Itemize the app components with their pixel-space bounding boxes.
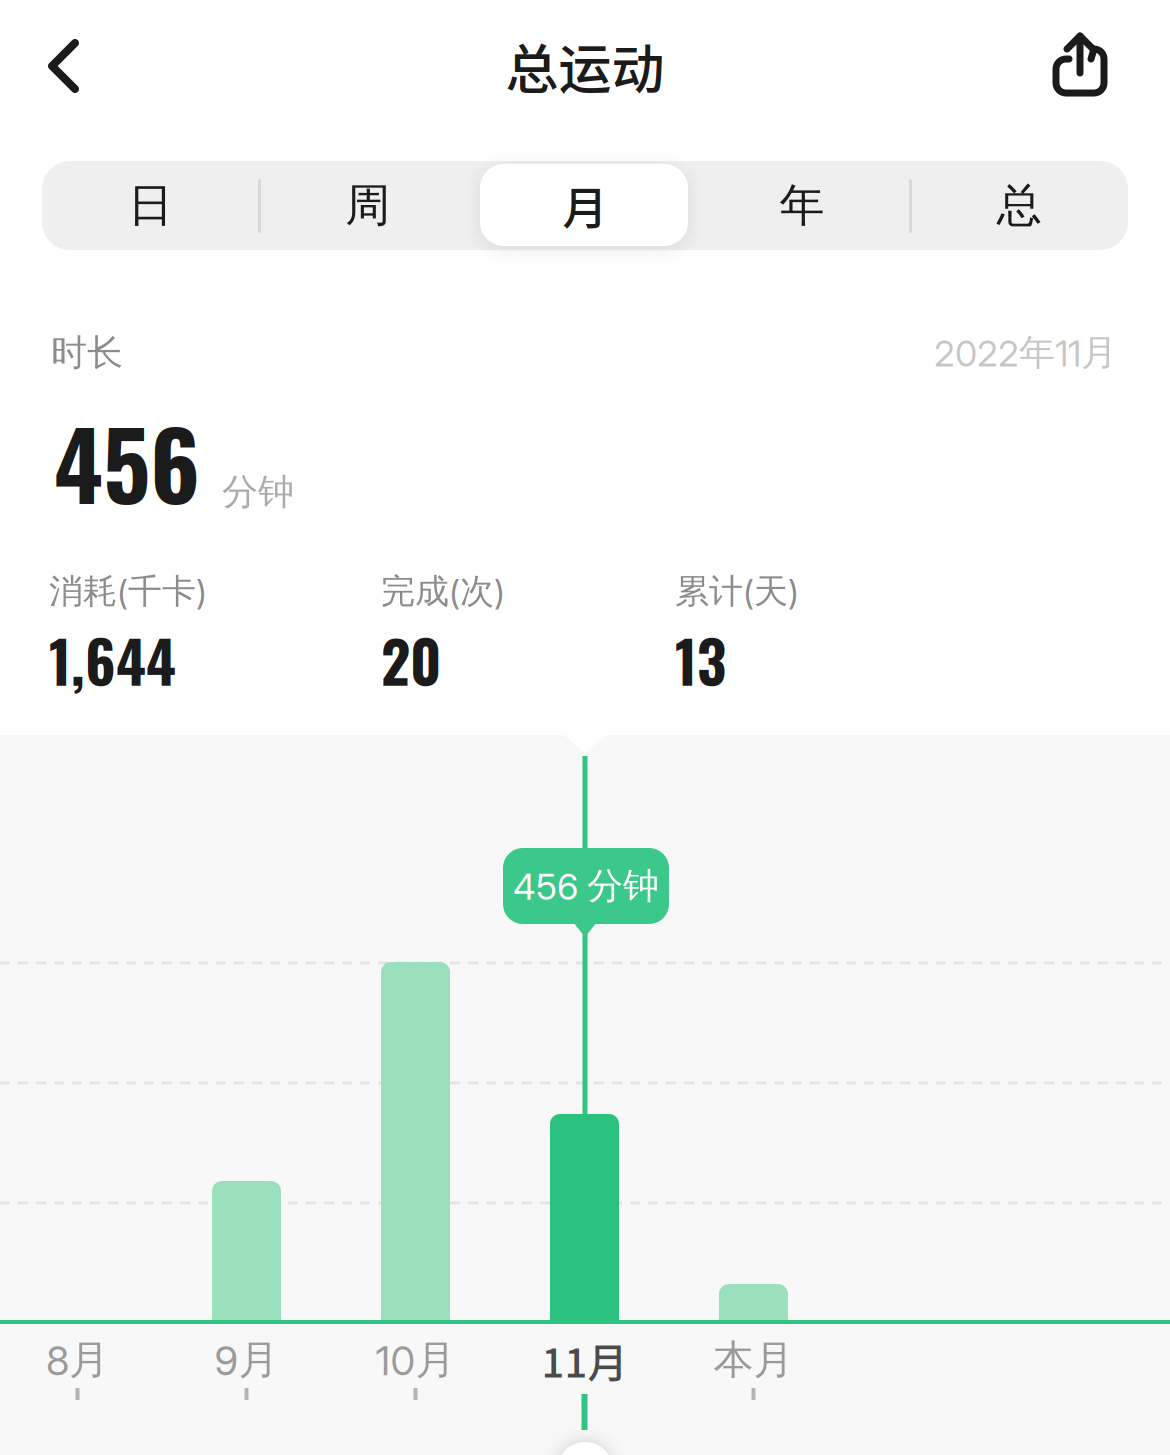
staticText: 时长: [51, 330, 123, 375]
staticText: 10月: [375, 1335, 455, 1385]
staticText: 1,644: [49, 618, 176, 702]
staticText: 消耗(千卡): [49, 570, 207, 613]
button[interactable]: 日: [42, 161, 259, 250]
staticText: 2022年11月: [934, 330, 1117, 375]
staticText: 分钟: [222, 469, 294, 515]
staticText: 9月: [214, 1335, 278, 1385]
button[interactable]: 周: [259, 161, 476, 250]
button[interactable]: [28, 21, 118, 111]
staticText: 本月: [713, 1335, 793, 1385]
button[interactable]: 年: [694, 161, 911, 250]
staticText: 日: [128, 177, 173, 234]
staticText: 总运动: [505, 28, 664, 104]
button[interactable]: 总: [911, 161, 1128, 250]
button[interactable]: 月: [476, 161, 693, 250]
staticText: 总: [997, 177, 1042, 234]
staticText: 完成(次): [381, 570, 505, 613]
staticText: 456: [54, 393, 200, 531]
staticText: 年: [780, 177, 825, 234]
staticText: 累计(天): [675, 570, 799, 613]
button[interactable]: 9月: [214, 1335, 278, 1385]
button[interactable]: [1035, 19, 1125, 109]
staticText: 456 分钟: [513, 863, 659, 909]
staticText: 20: [381, 618, 441, 702]
button[interactable]: 本月: [713, 1335, 793, 1385]
staticText: 周: [345, 177, 390, 234]
staticText: 11月: [541, 1331, 627, 1389]
button[interactable]: 11月: [541, 1331, 627, 1389]
staticText: 8月: [46, 1335, 109, 1385]
button[interactable]: 10月: [375, 1335, 455, 1385]
button[interactable]: 8月: [46, 1335, 109, 1385]
staticText: 13: [675, 618, 726, 702]
staticText: 月: [562, 173, 607, 238]
